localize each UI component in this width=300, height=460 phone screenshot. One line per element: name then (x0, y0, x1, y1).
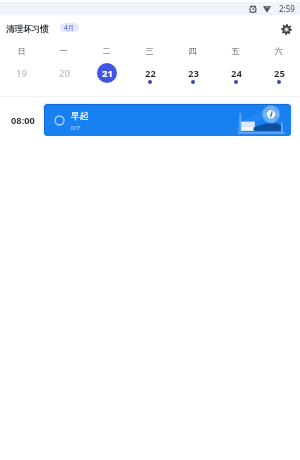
staticText: 25 (274, 67, 285, 80)
button[interactable]: 四 (171, 40, 214, 92)
button[interactable]: 一 (42, 40, 85, 92)
staticText: 23 (188, 67, 199, 80)
staticText: 08:00 (11, 114, 35, 127)
staticText: 21 (102, 67, 113, 80)
button[interactable]: 4月 (60, 23, 79, 32)
staticText: 24 (231, 67, 242, 80)
button[interactable]: 五 (214, 40, 257, 92)
staticText: 五 (231, 46, 240, 56)
button[interactable]: Settings (276, 19, 296, 39)
button[interactable]: 三 (128, 40, 171, 92)
staticText: 22 (145, 67, 156, 80)
staticText: 三 (145, 46, 154, 56)
staticText: 日 (17, 46, 26, 56)
staticText: 20 (59, 67, 70, 80)
staticText: 19 (16, 67, 27, 80)
button[interactable]: 二 (85, 40, 128, 92)
button[interactable]: 早起 (44, 104, 291, 136)
staticText: 早起 (71, 111, 89, 122)
button[interactable]: 六 (257, 40, 300, 92)
staticText: 二 (102, 46, 111, 56)
button[interactable]: 日 (0, 40, 42, 92)
staticText: 0/7 (71, 124, 81, 132)
staticText: 4月 (64, 23, 75, 32)
staticText: 一 (59, 46, 68, 56)
staticText: 四 (188, 46, 197, 56)
staticText: 清理坏习惯 (6, 24, 49, 35)
staticText: 六 (274, 46, 283, 56)
staticText: 2:59 (279, 3, 295, 14)
